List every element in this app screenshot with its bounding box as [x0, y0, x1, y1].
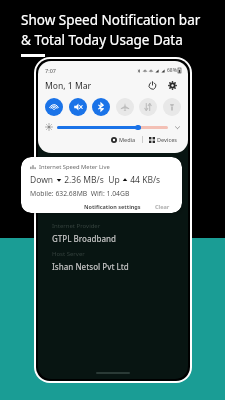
button[interactable]: Devices	[149, 136, 177, 143]
button[interactable]: Notification settings	[84, 203, 141, 210]
staticText: Mbps	[104, 187, 120, 194]
button[interactable]: Bluetooth	[92, 98, 110, 116]
button[interactable]: Power	[146, 79, 159, 92]
button[interactable]: Internet Speed Meter Live	[21, 157, 182, 213]
button[interactable]: Wi-Fi	[45, 98, 63, 116]
button[interactable]: Airplane mode	[116, 98, 134, 116]
staticText: Upload	[147, 196, 171, 206]
staticText: 44 KB/s	[128, 174, 161, 186]
staticText: 0	[98, 182, 104, 194]
button[interactable]: Brightness	[57, 125, 168, 130]
staticText: Devices	[157, 136, 177, 143]
staticText: Mobile: 632.68MB Wifi: 1.04GB	[30, 189, 130, 198]
staticText: 68%	[167, 67, 177, 74]
staticText: GTPL Broadband	[52, 233, 116, 244]
staticText: & Total Today Usage Data	[21, 31, 183, 49]
button[interactable]: Mute	[69, 98, 87, 116]
staticText: Notification settings	[84, 203, 141, 210]
button[interactable]: Mobile data	[139, 98, 157, 116]
staticText: Clear	[155, 203, 170, 210]
staticText: Ishan Netsol Pvt Ltd	[52, 261, 129, 272]
staticText: Download	[104, 196, 138, 206]
staticText: 2.36 MB/s Up	[62, 174, 122, 186]
button[interactable]: Settings	[166, 79, 179, 92]
button[interactable]: Flashlight	[163, 98, 181, 116]
button[interactable]: Clear	[155, 203, 170, 210]
staticText: Internet Speed Meter Live	[39, 163, 110, 171]
staticText: Down	[30, 174, 56, 186]
staticText: Show Speed Notification bar	[21, 11, 201, 29]
staticText: 134.0	[52, 179, 81, 194]
staticText: 7:07	[45, 67, 56, 74]
staticText: Media	[119, 136, 136, 143]
staticText: Host Server	[52, 250, 85, 258]
staticText: ms	[81, 187, 89, 194]
staticText: Internet Provider	[52, 222, 101, 230]
staticText: 0	[141, 182, 147, 194]
button[interactable]: Media	[111, 136, 136, 143]
staticText: Mon, 1 Mar	[45, 80, 92, 92]
